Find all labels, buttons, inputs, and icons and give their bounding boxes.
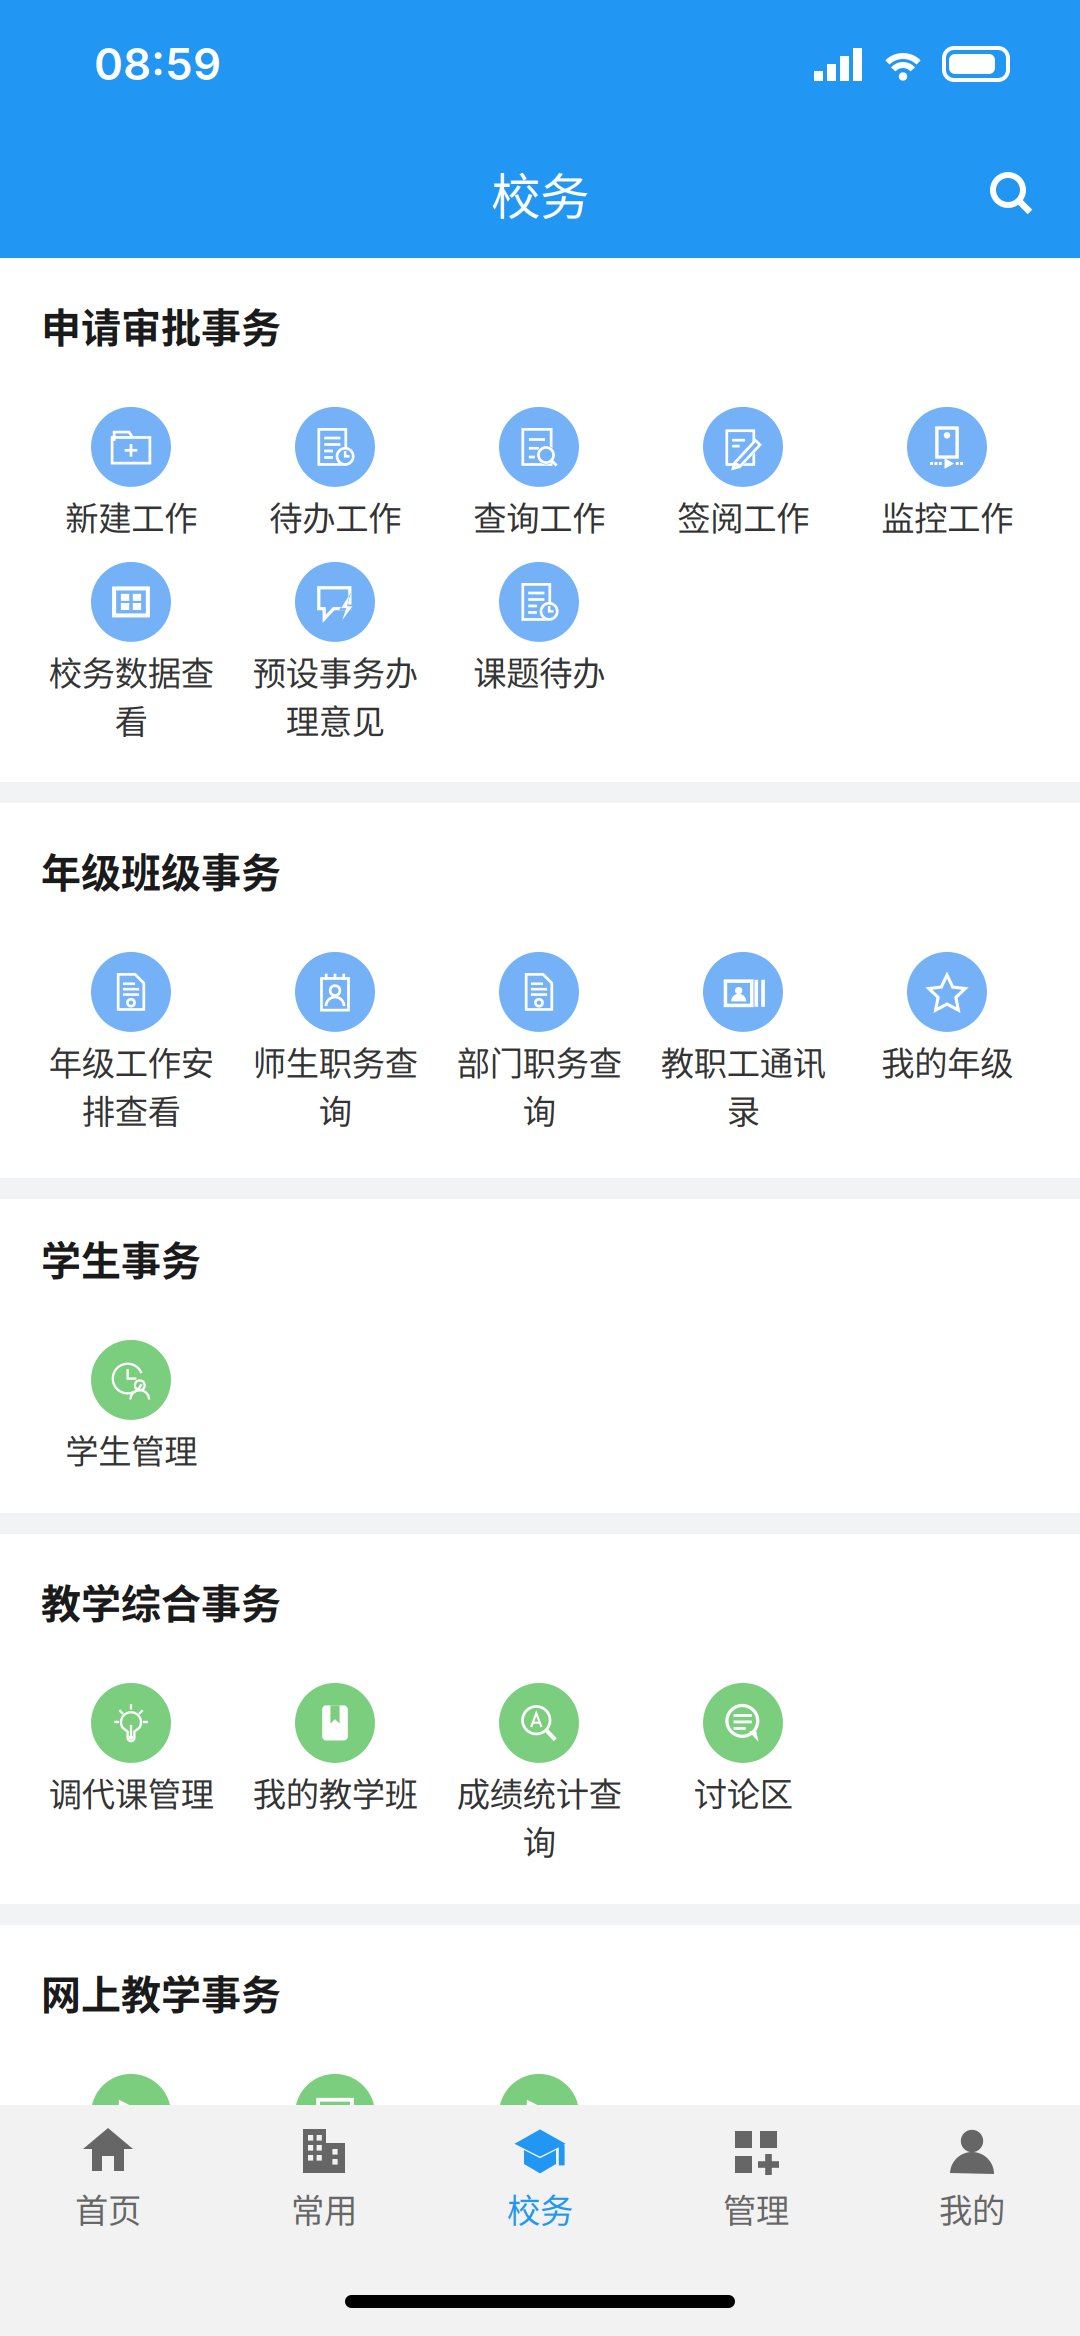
staticText: 待办工作 [269,492,401,540]
button[interactable]: 教学资源 [233,2074,437,2274]
staticText: 学生管理 [65,1425,197,1473]
staticText: 监控工作 [881,492,1013,540]
staticText: 课题待办 [473,647,605,695]
button[interactable]: 我的教学班 [233,1683,437,1893]
button[interactable]: 在线课堂 [29,2074,233,2274]
staticText: 校务数据查看 [48,647,213,743]
staticText: 教学资源 [269,2159,401,2207]
staticText: 教职工通讯录 [660,1037,825,1133]
button[interactable]: 常用 [216,2123,432,2258]
button[interactable]: 教职工通讯录 [641,952,845,1162]
staticText: 我的年级 [881,1037,1013,1085]
staticText: 签阅工作 [677,492,809,540]
button[interactable]: 调代课管理 [29,1683,233,1893]
staticText: 讨论区 [693,1768,792,1816]
button[interactable]: 微课视频 [437,2074,641,2274]
button[interactable]: 学生管理 [29,1340,233,1499]
staticText: 学生事务 [41,1229,201,1287]
staticText: 首页 [75,2184,141,2232]
button[interactable]: 课题待办 [437,562,641,762]
staticText: 申请审批事务 [41,296,281,354]
staticText: 08:59 [94,37,221,91]
button[interactable]: 签阅工作 [641,407,845,562]
staticText: 成绩统计查询 [456,1768,621,1864]
staticText: 预设事务办理意见 [252,647,417,743]
staticText: 网上教学事务 [41,1963,281,2021]
button[interactable]: 校务 [432,2123,648,2258]
button[interactable]: 查询工作 [437,407,641,562]
staticText: 在线课堂 [65,2159,197,2207]
staticText: 新建工作 [65,492,197,540]
staticText: 我的教学班 [252,1768,417,1816]
staticText: 微课视频 [473,2159,605,2207]
staticText: 师生职务查询 [252,1037,417,1133]
button[interactable]: 讨论区 [641,1683,845,1893]
button[interactable]: 校务数据查看 [29,562,233,762]
staticText: 校务 [491,157,589,229]
staticText: 年级工作安排查看 [48,1037,213,1133]
button[interactable]: 我的年级 [845,952,1049,1162]
staticText: 调代课管理 [48,1768,213,1816]
staticText: 教学综合事务 [41,1572,281,1630]
button[interactable]: 管理 [648,2123,864,2258]
button[interactable]: 年级工作安排查看 [29,952,233,1162]
button[interactable]: Search [986,168,1036,218]
button[interactable]: 师生职务查询 [233,952,437,1162]
staticText: 我的 [939,2184,1005,2232]
staticText: 管理 [723,2184,789,2232]
staticText: 校务 [507,2184,573,2232]
staticText: 部门职务查询 [456,1037,621,1133]
button[interactable]: 待办工作 [233,407,437,562]
staticText: 查询工作 [473,492,605,540]
button[interactable]: 监控工作 [845,407,1049,562]
staticText: 年级班级事务 [41,841,281,899]
button[interactable]: 首页 [0,2123,216,2258]
button[interactable]: 新建工作 [29,407,233,562]
staticText: 常用 [291,2184,357,2232]
button[interactable]: 我的 [864,2123,1080,2258]
button[interactable]: 部门职务查询 [437,952,641,1162]
button[interactable]: 预设事务办理意见 [233,562,437,762]
button[interactable]: 成绩统计查询 [437,1683,641,1893]
